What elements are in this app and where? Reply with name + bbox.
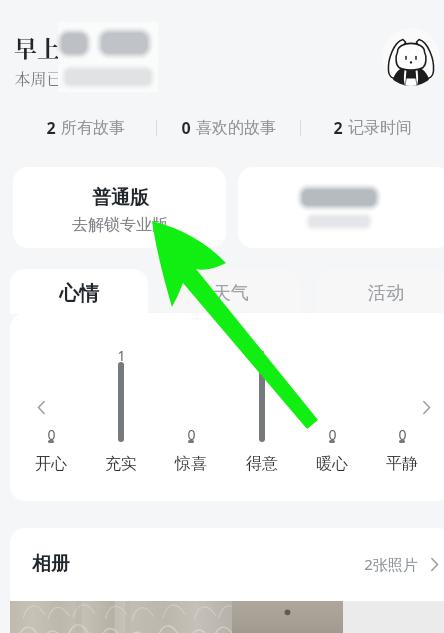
staticText: 1 — [117, 346, 126, 365]
staticText: 2 — [333, 117, 343, 139]
button[interactable]: 天气 — [162, 269, 300, 314]
staticText: 喜欢的故事 — [196, 118, 276, 138]
staticText: 普通版 — [92, 186, 149, 210]
staticText: 充实 — [105, 454, 137, 474]
staticText: 活动 — [368, 282, 404, 305]
staticText: 本周已 — [14, 67, 63, 90]
button[interactable]: 2 — [14, 113, 156, 143]
button[interactable]: Next week — [410, 391, 442, 423]
button[interactable] — [238, 167, 444, 248]
staticText: 得意 — [246, 454, 278, 474]
staticText: 开心 — [35, 454, 67, 474]
staticText: 0 — [187, 425, 196, 444]
staticText: 相册 — [32, 552, 70, 576]
button[interactable]: Profile avatar — [382, 28, 440, 86]
staticText: 天气 — [213, 282, 249, 305]
button[interactable]: Previous week — [25, 391, 57, 423]
staticText: 平静 — [386, 454, 418, 474]
staticText: 0 — [181, 117, 191, 139]
button[interactable]: 普通版 — [13, 167, 226, 248]
button[interactable]: 2 — [301, 113, 444, 143]
staticText: 1 — [258, 346, 267, 365]
staticText: 2 — [46, 117, 56, 139]
button[interactable]: 0 — [157, 113, 300, 143]
button[interactable]: 活动 — [317, 269, 444, 314]
staticText: 记录时间 — [348, 118, 412, 138]
staticText: 所有故事 — [61, 118, 125, 138]
staticText: 暖心 — [316, 454, 348, 474]
staticText: 2张照片 — [364, 554, 418, 574]
staticText: 心情 — [59, 281, 99, 306]
staticText: 早上 — [14, 31, 60, 64]
staticText: 0 — [328, 425, 337, 444]
button[interactable]: 相册 — [10, 528, 444, 600]
staticText: 惊喜 — [175, 454, 207, 474]
button[interactable]: 心情 — [10, 269, 148, 314]
staticText: 0 — [398, 425, 407, 444]
staticText: 去解锁专业版 — [72, 215, 168, 235]
staticText: 0 — [47, 425, 56, 444]
